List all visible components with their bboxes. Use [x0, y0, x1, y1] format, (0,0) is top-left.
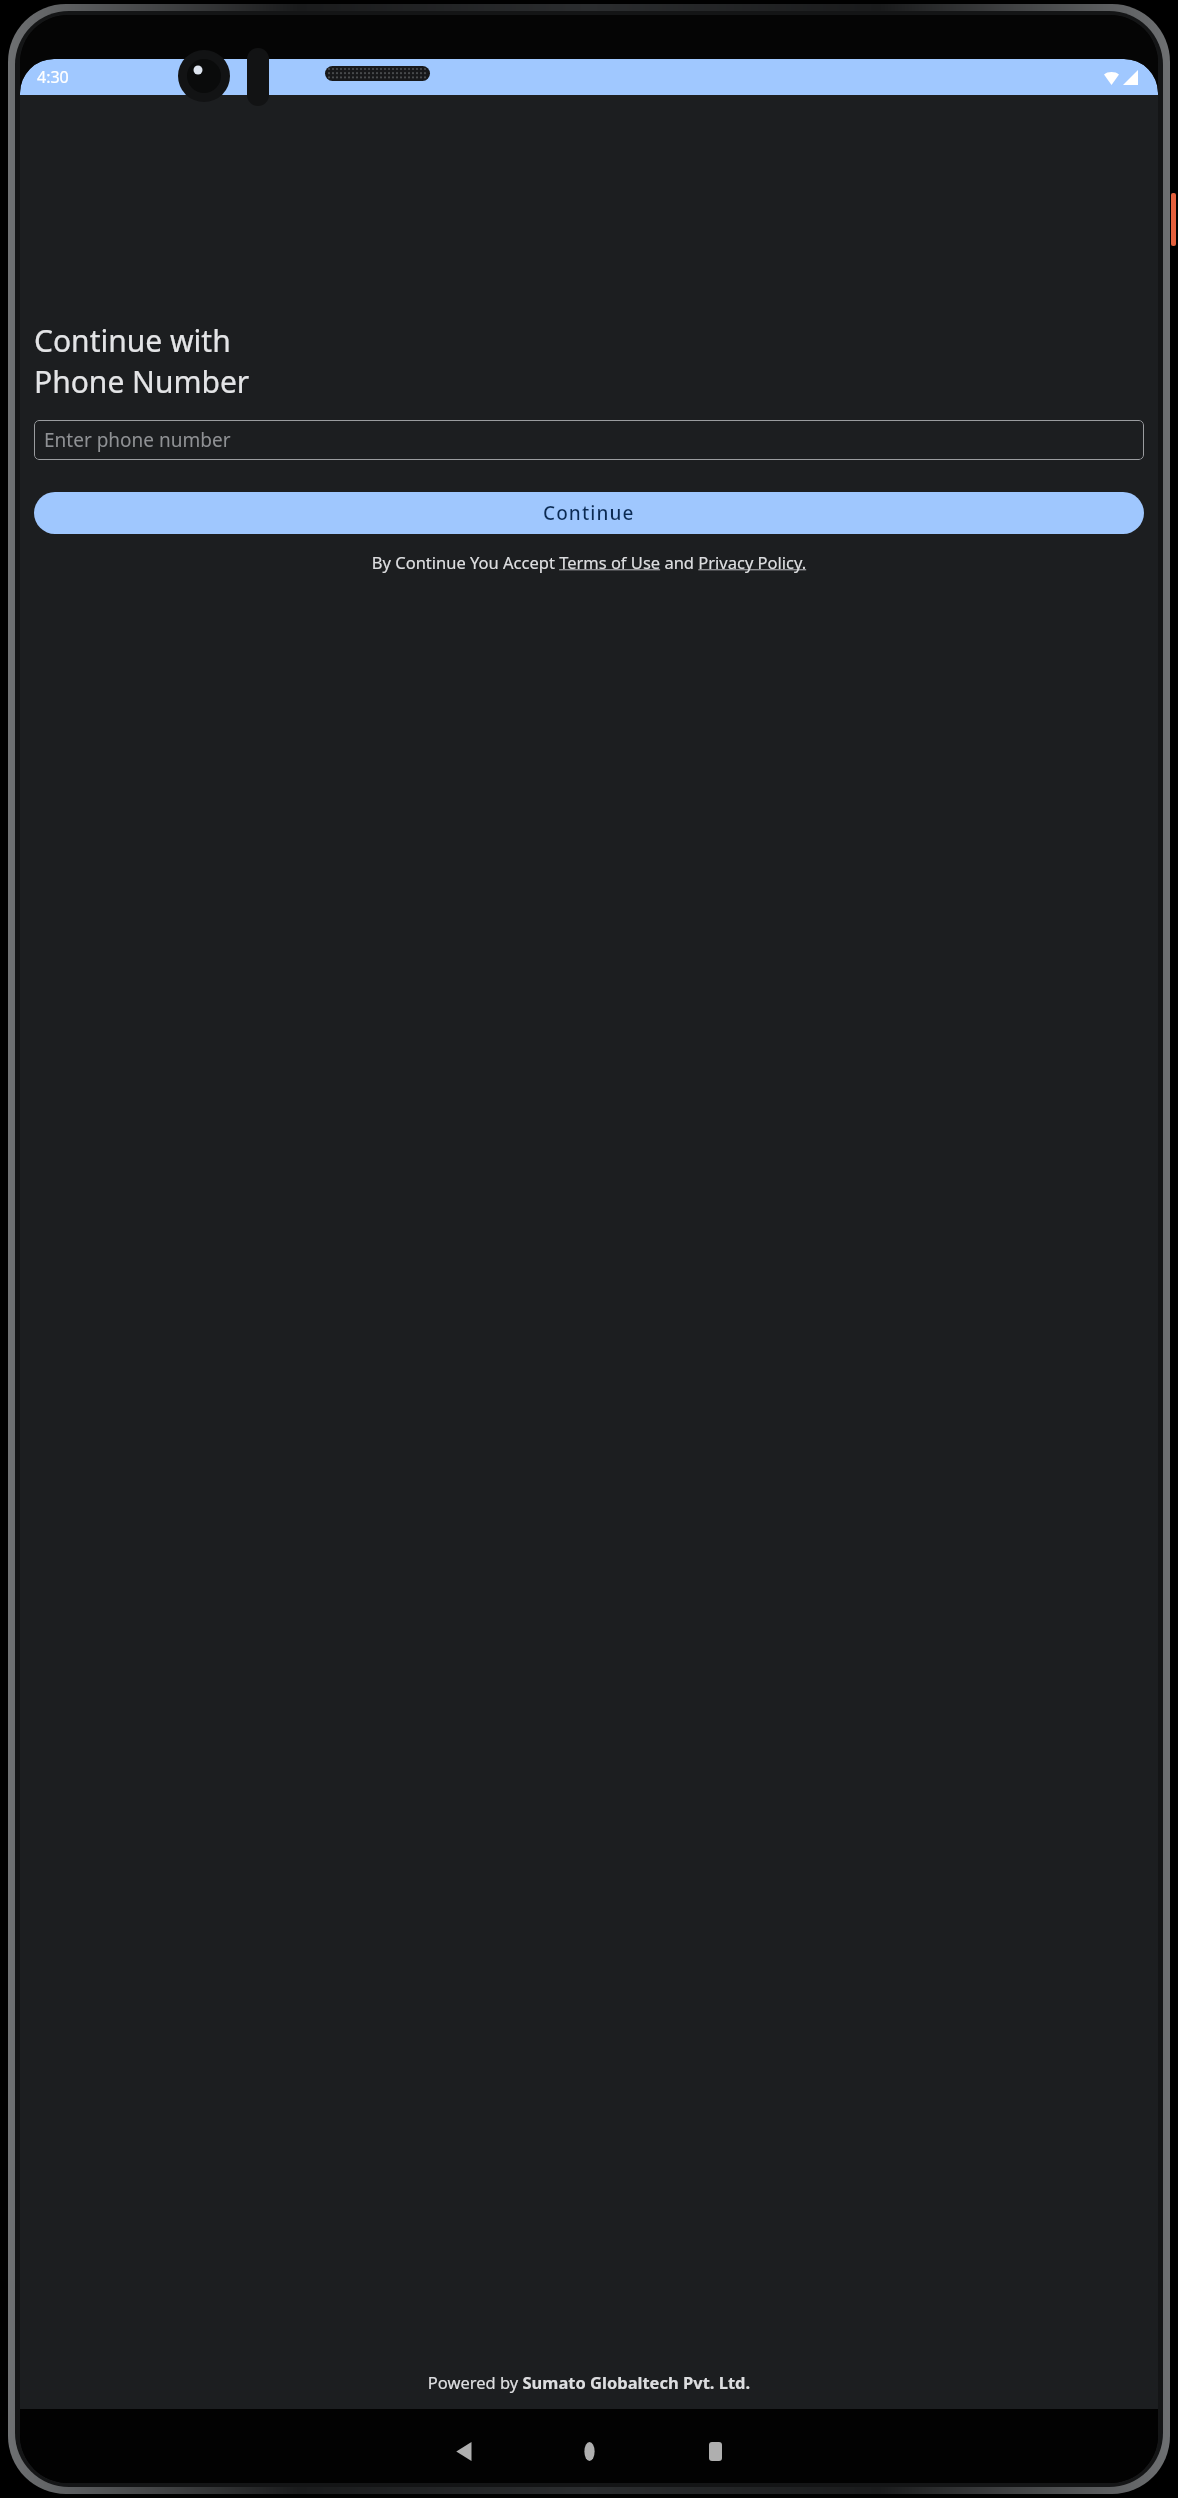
button[interactable]: By Continue You Accept Terms of Use and … — [34, 551, 1144, 573]
staticText: Continue with — [34, 320, 231, 361]
button[interactable]: Home — [561, 2423, 617, 2479]
staticText: Continue — [543, 500, 635, 526]
button[interactable]: Back — [435, 2423, 491, 2479]
button[interactable]: Continue — [34, 492, 1144, 534]
staticText: 4:30 — [37, 66, 69, 88]
button[interactable]: Recent apps — [687, 2423, 743, 2479]
staticText: Powered by Sumato Globaltech Pvt. Ltd. — [20, 2371, 1158, 2393]
button[interactable]: Enter phone number — [34, 420, 1144, 460]
staticText: Phone Number — [34, 361, 250, 402]
staticText: By Continue You Accept Terms of Use and … — [34, 551, 1144, 573]
staticText: Enter phone number — [44, 427, 231, 453]
